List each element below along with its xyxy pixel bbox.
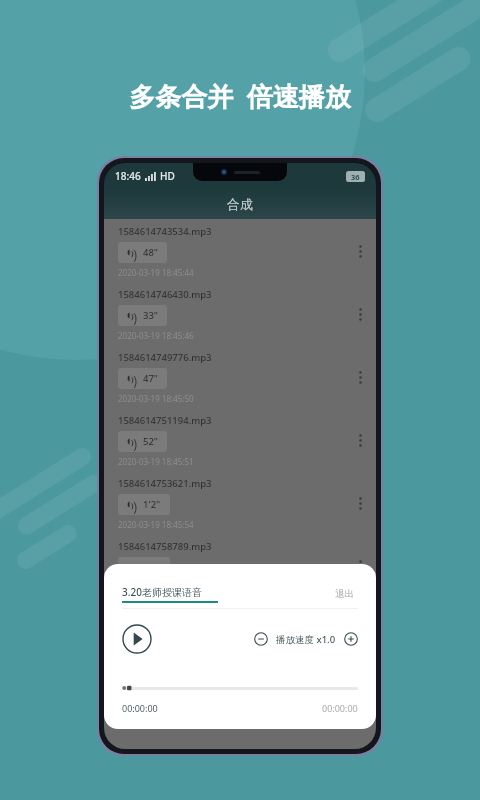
staticText: 1584614743534.mp3 (118, 225, 212, 238)
staticText: 2020-03-19 18:45:54 (118, 519, 194, 530)
staticText: 2020-03-19 18:45:50 (118, 393, 194, 404)
staticText: 1'9" (143, 561, 161, 574)
button[interactable]: 1584614753621.mp3 (104, 471, 376, 534)
staticText: 00:00:00 (322, 702, 358, 714)
button[interactable]: More options (347, 553, 373, 579)
button[interactable]: 1584614746430.mp3 (104, 282, 376, 345)
staticText: 18:46 (115, 169, 141, 183)
button[interactable]: Play (122, 624, 152, 654)
button[interactable]: 退出 (331, 584, 358, 604)
staticText: 33" (143, 309, 158, 322)
button[interactable]: 1584614758789.mp3 (104, 534, 376, 597)
button[interactable]: Increase speed (344, 632, 358, 646)
staticText: 播放速度 x1.0 (276, 633, 336, 646)
staticText: 1584614758789.mp3 (118, 540, 212, 553)
staticText: 多条合并 倍速播放 (0, 78, 480, 114)
staticText: HD (160, 169, 175, 183)
staticText: 47" (143, 372, 158, 385)
button[interactable]: More options (347, 301, 373, 327)
button[interactable]: 1584614751194.mp3 (104, 408, 376, 471)
staticText: 2020-03-19 18:45:51 (118, 456, 194, 467)
staticText: 1584614753621.mp3 (118, 477, 212, 490)
staticText: 2020-03-19 18:45:46 (118, 330, 194, 341)
button[interactable]: More options (347, 364, 373, 390)
button[interactable]: 3.20老师授课语音 (122, 585, 331, 603)
button[interactable]: More options (347, 427, 373, 453)
staticText: 2020-03-19 18:45:59 (118, 582, 194, 593)
staticText: 1'2" (143, 498, 161, 511)
staticText: 48" (143, 246, 158, 259)
button[interactable]: 1584614749776.mp3 (104, 345, 376, 408)
button[interactable]: More options (347, 490, 373, 516)
button[interactable]: More options (347, 238, 373, 264)
staticText: 1584614751194.mp3 (118, 414, 212, 427)
button[interactable] (122, 682, 358, 694)
button[interactable]: 1584614743534.mp3 (104, 219, 376, 282)
staticText: 3.20老师授课语音 (122, 585, 202, 599)
staticText: 2020-03-19 18:45:44 (118, 267, 194, 278)
staticText: 36 (351, 172, 360, 182)
staticText: 1584614746430.mp3 (118, 288, 212, 301)
staticText: 00:00:00 (122, 702, 158, 714)
staticText: 合成 (227, 196, 253, 212)
staticText: 退出 (335, 588, 354, 600)
staticText: 52" (143, 435, 158, 448)
staticText: 1584614749776.mp3 (118, 351, 212, 364)
button[interactable]: Decrease speed (254, 632, 268, 646)
